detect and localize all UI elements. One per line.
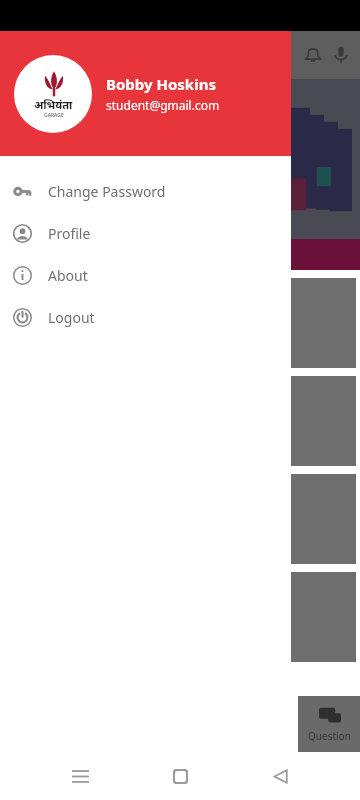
staticText: student@gmail.com — [106, 97, 220, 113]
button[interactable]: Profile — [0, 212, 291, 254]
button[interactable]: Voice search — [328, 42, 354, 68]
staticText: Profile — [48, 224, 91, 243]
button[interactable]: Recent apps — [60, 756, 100, 796]
button[interactable]: About — [0, 254, 291, 296]
staticText: GARAGE — [44, 112, 64, 119]
staticText: Ganga Sugars — [16, 294, 103, 312]
staticText: Change Password — [48, 182, 166, 201]
button[interactable]: Change Password — [0, 170, 291, 212]
button[interactable]: Logout — [0, 296, 291, 338]
button[interactable]: Back — [260, 756, 300, 796]
staticText: Sugar Association — [16, 324, 117, 340]
button[interactable]: Ganga Sugars — [4, 474, 356, 564]
staticText: About — [48, 266, 88, 285]
button[interactable]: Ganga Sugars — [4, 278, 356, 368]
button[interactable]: Ganga Sugars — [4, 376, 356, 466]
staticText: अभियंता — [34, 97, 73, 112]
staticText: Question — [308, 729, 351, 743]
staticText: Logout — [48, 308, 95, 327]
staticText: Bobby Hoskins — [106, 74, 216, 94]
button[interactable]: Home — [160, 756, 200, 796]
button[interactable]: Notifications — [300, 42, 326, 68]
button[interactable]: Question — [298, 696, 360, 752]
button[interactable]: Ganga Sugars — [4, 572, 356, 662]
